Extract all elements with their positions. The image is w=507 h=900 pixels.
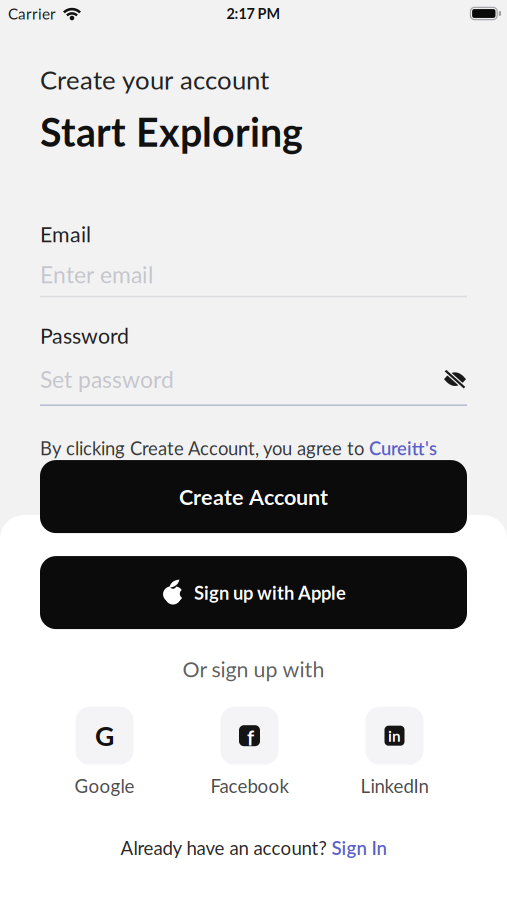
- staticText: Already have an account?: [120, 837, 331, 859]
- button[interactable]: Email: [40, 261, 467, 297]
- staticText: Email: [40, 221, 91, 247]
- staticText: Google: [74, 775, 134, 797]
- staticText: Password: [40, 323, 129, 348]
- staticText: Enter email: [40, 261, 153, 288]
- staticText: Sign up with Apple: [194, 582, 346, 604]
- staticText: Create Account: [179, 484, 328, 509]
- staticText: Cureitt's: [369, 437, 437, 459]
- button[interactable]: Password: [40, 365, 467, 406]
- staticText: 2:17 PM: [226, 5, 280, 22]
- staticText: in: [388, 726, 401, 745]
- button[interactable]: Create Account: [40, 460, 467, 533]
- staticText: By clicking Create Account, you agree to: [40, 437, 369, 459]
- button[interactable]: Show password: [443, 370, 467, 388]
- button[interactable]: Sign up with Facebook: [220, 707, 278, 765]
- button[interactable]: Cureitt's: [369, 437, 437, 459]
- staticText: Sign In: [331, 837, 386, 859]
- staticText: Facebook: [210, 775, 288, 797]
- button[interactable]: Sign In: [331, 837, 386, 859]
- staticText: Carrier: [8, 4, 56, 23]
- button[interactable]: Sign up with Apple: [40, 556, 467, 629]
- staticText: Or sign up with: [182, 656, 324, 682]
- staticText: Start Exploring: [40, 108, 303, 155]
- staticText: G: [95, 720, 114, 752]
- button[interactable]: Sign up with LinkedIn: [365, 707, 423, 765]
- staticText: f: [247, 726, 254, 750]
- staticText: Create your account: [40, 64, 269, 95]
- staticText: Set password: [40, 365, 174, 393]
- button[interactable]: Sign up with Google: [75, 707, 133, 765]
- staticText: LinkedIn: [360, 775, 428, 797]
